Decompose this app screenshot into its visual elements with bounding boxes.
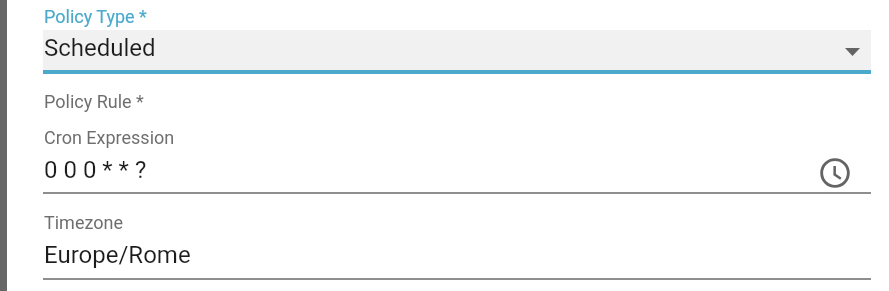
staticText: 0 0 0 * * ? (44, 156, 147, 184)
staticText: Policy Rule * (44, 91, 144, 112)
button[interactable]: Cron Expression (43, 120, 871, 194)
staticText: Cron Expression (44, 127, 175, 148)
staticText: Scheduled (44, 34, 156, 62)
staticText: Timezone (44, 212, 123, 233)
button[interactable]: Select time (816, 154, 853, 191)
button[interactable]: Policy Type * (43, 0, 871, 74)
button[interactable]: Timezone (43, 205, 871, 280)
other: Open policy type menu (845, 48, 860, 56)
staticText: Policy Type * (44, 6, 147, 27)
staticText: Europe/Rome (44, 241, 191, 269)
